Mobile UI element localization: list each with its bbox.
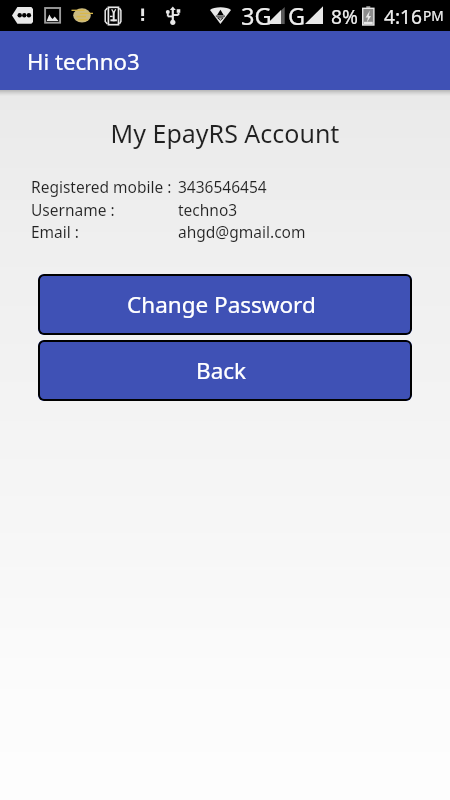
staticText: ahgd@gmail.com	[178, 221, 306, 242]
staticText: Registered mobile :	[31, 176, 178, 197]
staticText: Change Password	[127, 289, 316, 320]
staticText: My EpayRS Account	[0, 116, 450, 150]
staticText: techno3	[178, 199, 238, 220]
button[interactable]: Change Password	[38, 274, 412, 335]
staticText: G	[288, 0, 306, 31]
staticText: PM	[423, 6, 444, 25]
staticText: Email :	[31, 221, 178, 242]
staticText: Back	[196, 355, 247, 386]
staticText: 3436546454	[178, 176, 267, 197]
staticText: 3G	[241, 0, 272, 31]
staticText: 8%	[331, 3, 358, 29]
staticText: 4:16	[384, 3, 423, 29]
staticText: Hi techno3	[27, 46, 140, 76]
button[interactable]: Back	[38, 340, 412, 401]
staticText: Username :	[31, 199, 178, 220]
